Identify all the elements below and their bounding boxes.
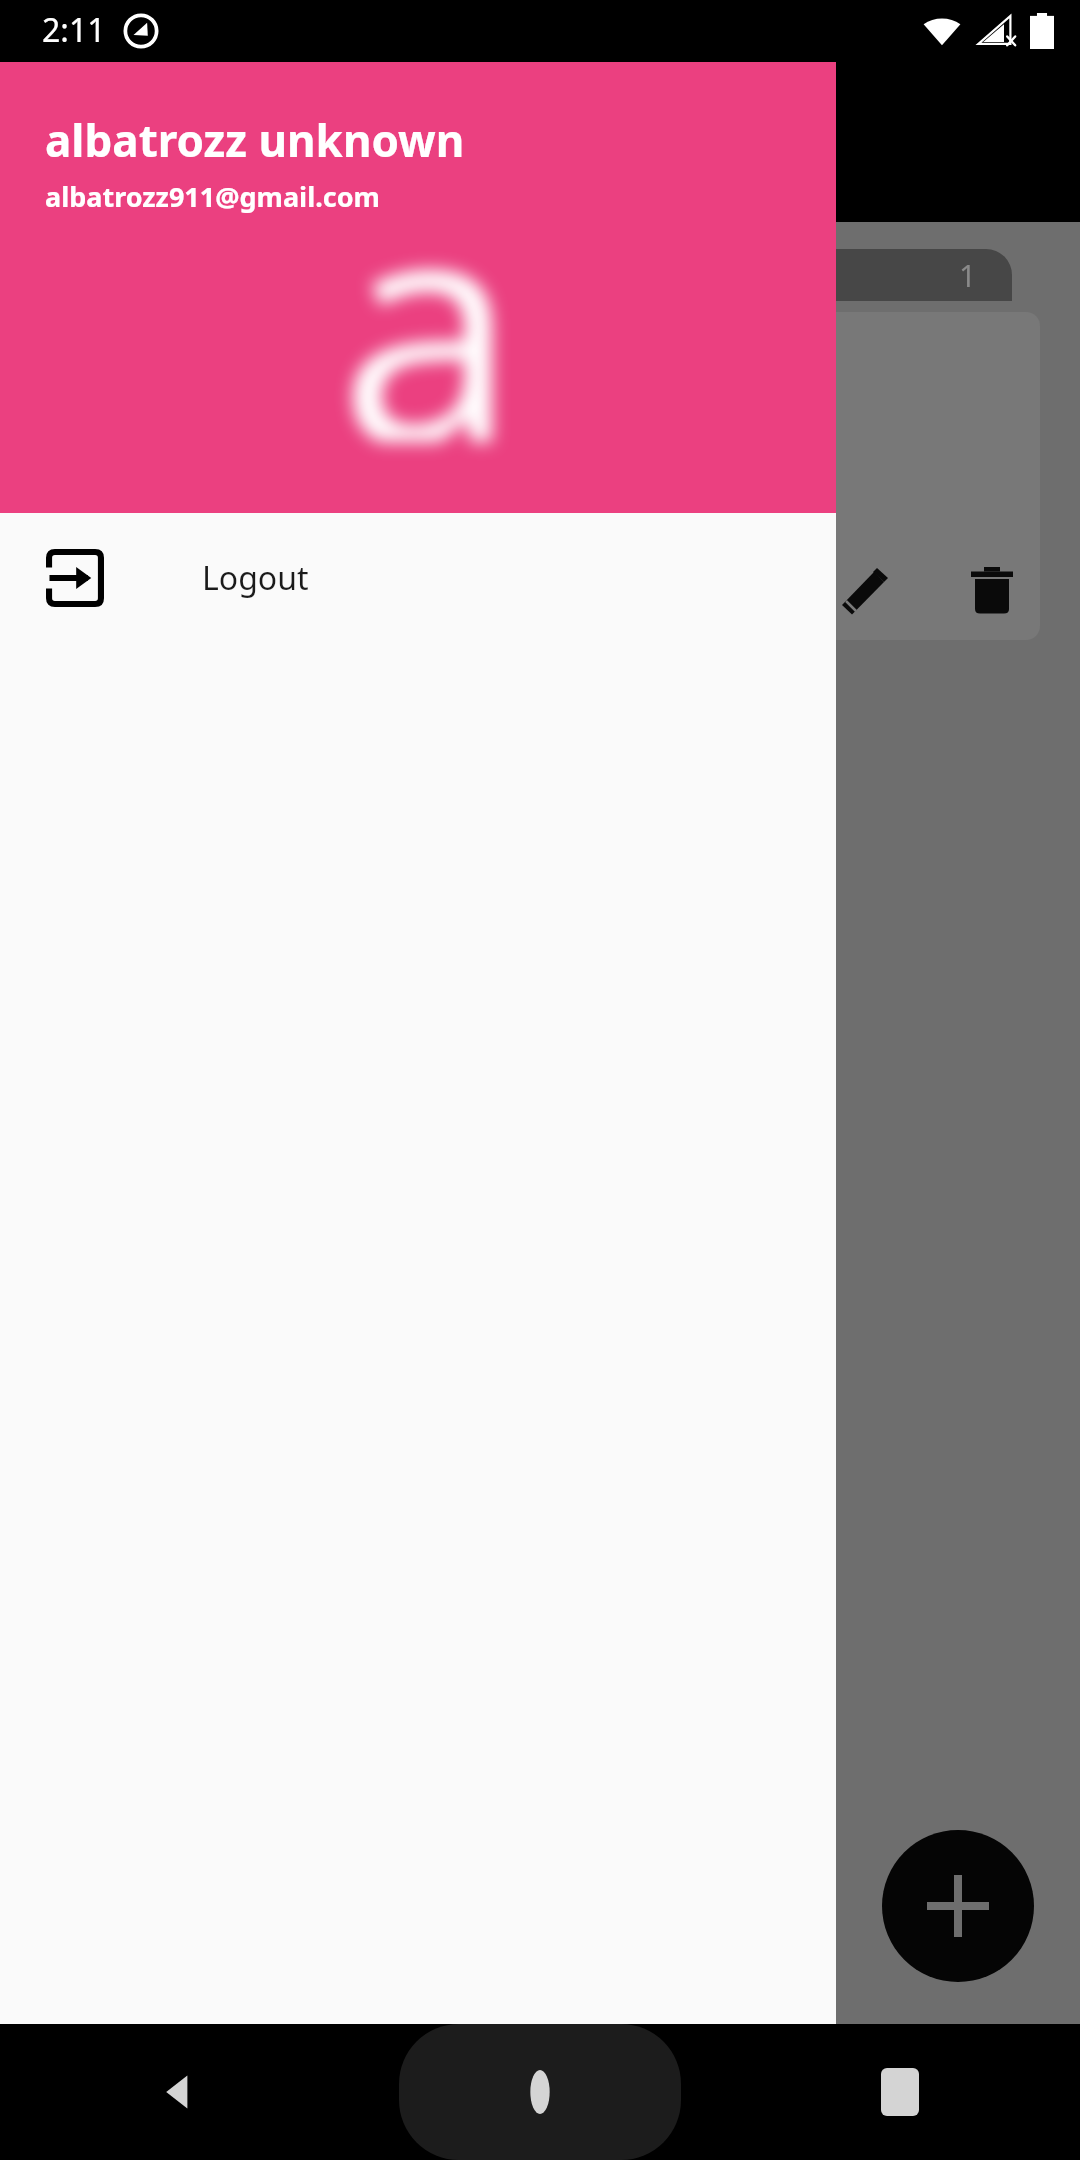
staticText: 1 [959,255,977,296]
button[interactable]: Home [360,2024,720,2160]
staticText: albatrozz911@gmail.com [45,178,380,215]
staticText: Logout [202,556,309,600]
other: Logout [46,549,104,607]
button[interactable]: Delete [960,558,1024,622]
staticText: albatrozz unknown [45,110,465,170]
button[interactable]: Recent apps [720,2024,1080,2160]
button[interactable]: Edit [726,312,1040,640]
button[interactable]: Edit [834,558,898,622]
staticText: a [338,102,518,442]
staticText: 2:11 [42,8,106,52]
button[interactable]: 1 [744,249,1012,301]
button[interactable]: Add [882,1830,1034,1982]
button[interactable]: Back [0,2024,360,2160]
button[interactable]: Logout [0,513,836,643]
